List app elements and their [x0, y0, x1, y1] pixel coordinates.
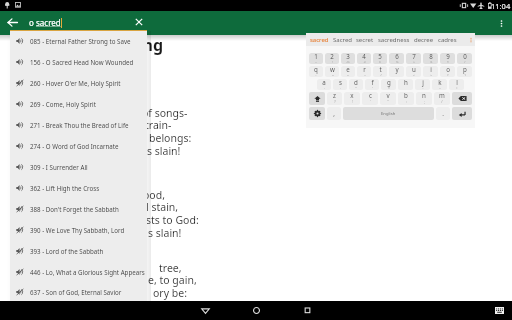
button[interactable]: 5 — [373, 53, 387, 64]
staticText: g — [387, 79, 391, 86]
button[interactable]: s — [333, 79, 347, 90]
button[interactable]: 8 — [423, 53, 438, 64]
staticText: h — [404, 79, 408, 86]
button[interactable]: Sacred — [331, 33, 354, 46]
staticText: 7 — [412, 53, 416, 60]
staticText: 260 - Hover O'er Me, Holy Spirit — [30, 79, 121, 87]
button[interactable]: sacred — [308, 33, 331, 46]
button[interactable]: 085 - Eternal Father Strong to Save — [10, 30, 147, 51]
button[interactable]: j — [415, 79, 430, 90]
button[interactable]: c — [362, 92, 378, 105]
button[interactable]: 1 — [309, 53, 323, 64]
button[interactable]: 309 - I Surrender All — [10, 156, 147, 177]
button[interactable]: h — [398, 79, 413, 90]
staticText: i — [430, 66, 432, 73]
button[interactable]: w — [325, 66, 339, 77]
button[interactable]: 156 - O Sacred Head Now Wounded — [10, 51, 147, 72]
staticText: n — [422, 92, 426, 99]
button[interactable]: Backspace — [452, 92, 472, 105]
button[interactable]: 362 - Lift High the Cross — [10, 177, 147, 198]
button[interactable]: 0 — [457, 53, 472, 64]
button[interactable]: g — [381, 79, 396, 90]
staticText: p — [463, 66, 467, 73]
button[interactable]: 6 — [389, 53, 404, 64]
button[interactable]: 393 - Lord of the Sabbath — [10, 240, 147, 261]
button[interactable]: 4 — [357, 53, 371, 64]
button[interactable]: y — [389, 66, 404, 77]
staticText: o — [446, 66, 450, 73]
button[interactable]: p — [457, 66, 472, 77]
button[interactable]: n — [416, 92, 432, 105]
staticText: = — [439, 86, 441, 89]
button[interactable]: f — [365, 79, 379, 90]
button[interactable]: 269 - Come, Holy Spirit — [10, 93, 147, 114]
button[interactable]: Suggestion options — [467, 33, 475, 46]
button[interactable]: Clear search — [128, 11, 150, 33]
staticText: s slain! — [148, 226, 182, 240]
button[interactable]: r — [357, 66, 371, 77]
staticText: t — [379, 66, 382, 73]
button[interactable]: sacredness — [376, 33, 412, 46]
staticText: / — [380, 73, 382, 76]
button[interactable]: Back — [180, 301, 231, 320]
button[interactable]: 2 — [325, 53, 339, 64]
button[interactable]: Back — [1, 11, 24, 34]
button[interactable]: b — [398, 92, 414, 105]
button[interactable]: More options — [490, 12, 512, 34]
button[interactable]: 390 - We Love Thy Sabbath, Lord — [10, 219, 147, 240]
button[interactable]: decree — [412, 33, 436, 46]
button[interactable]: e — [341, 66, 355, 77]
button[interactable]: Shift — [309, 92, 325, 105]
staticText: " — [387, 99, 389, 104]
button[interactable]: a — [317, 79, 331, 90]
button[interactable]: Recent apps — [282, 301, 333, 320]
button[interactable]: z — [327, 92, 342, 105]
button[interactable]: , — [327, 107, 341, 120]
staticText: o — [29, 17, 36, 28]
staticText: + — [422, 86, 424, 89]
staticText: 362 - Lift High the Cross — [30, 184, 100, 192]
staticText: × — [332, 73, 334, 76]
button[interactable]: l — [449, 79, 464, 90]
staticText: 156 - O Sacred Head Now Wounded — [30, 58, 134, 66]
button[interactable]: v — [380, 92, 396, 105]
button[interactable]: t — [373, 66, 387, 77]
button[interactable]: Enter — [452, 107, 472, 120]
button[interactable]: 260 - Hover O'er Me, Holy Spirit — [10, 72, 147, 93]
staticText: | — [456, 86, 458, 89]
staticText: > — [430, 73, 432, 76]
button[interactable]: 7 — [406, 53, 421, 64]
button[interactable]: 274 - O Word of God Incarnate — [10, 135, 147, 156]
other: Shift — [314, 95, 321, 102]
button[interactable]: x — [344, 92, 360, 105]
staticText: z — [333, 92, 336, 99]
button[interactable]: English — [343, 107, 434, 120]
button[interactable]: i — [423, 66, 438, 77]
staticText: ood, — [143, 188, 165, 202]
button[interactable]: Home — [231, 301, 282, 320]
button[interactable]: 388 - Don't Forget the Sabbath — [10, 198, 147, 219]
button[interactable]: . — [436, 107, 450, 120]
button[interactable]: 271 - Break Thou the Bread of Life — [10, 114, 147, 135]
button[interactable]: o — [440, 66, 455, 77]
staticText: d — [354, 79, 358, 86]
button[interactable]: secret — [354, 33, 376, 46]
button[interactable]: q — [309, 66, 323, 77]
other: Enter — [458, 110, 466, 118]
button[interactable]: 3 — [341, 53, 355, 64]
staticText: ory be: — [153, 286, 187, 300]
button[interactable]: m — [434, 92, 450, 105]
staticText: l — [456, 79, 458, 86]
button[interactable]: Hide keyboard — [492, 301, 506, 320]
button[interactable]: cadres — [436, 33, 459, 46]
staticText: 393 - Lord of the Sabbath — [30, 247, 104, 255]
button[interactable]: d — [349, 79, 363, 90]
staticText: j — [422, 79, 424, 86]
button[interactable]: 446 - Lo, What a Glorious Sight Appears — [10, 261, 147, 282]
button[interactable]: Keyboard settings — [309, 107, 325, 120]
staticText: s slain! — [147, 144, 181, 158]
button[interactable]: u — [406, 66, 421, 77]
button[interactable]: 9 — [440, 53, 455, 64]
button[interactable]: 637 - Son of God, Eternal Savior — [10, 282, 147, 301]
button[interactable]: k — [432, 79, 447, 90]
